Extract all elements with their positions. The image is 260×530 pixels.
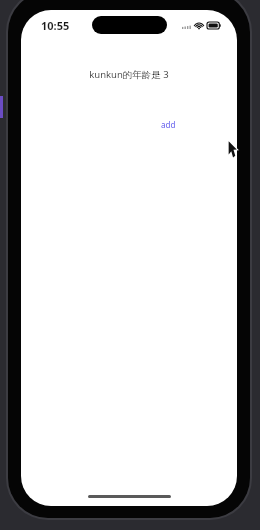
staticText: add bbox=[161, 119, 176, 130]
staticText: 10:55 bbox=[41, 18, 70, 33]
button[interactable]: add bbox=[158, 117, 179, 132]
staticText: kunkun的年龄是 3 bbox=[89, 68, 169, 81]
